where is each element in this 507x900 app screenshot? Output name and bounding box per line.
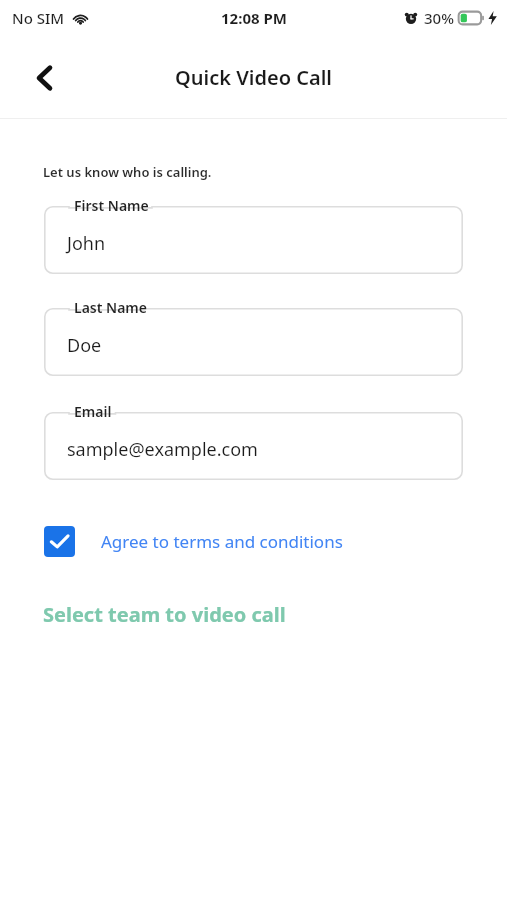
staticText: Doe	[67, 333, 102, 358]
button[interactable]: Agree to terms and conditions	[44, 526, 343, 557]
staticText: sample@example.com	[67, 437, 258, 462]
button[interactable]: Email	[44, 412, 463, 480]
staticText: No SIM	[12, 8, 65, 28]
button[interactable]: Select team to video call	[43, 601, 286, 628]
staticText: Quick Video Call	[175, 64, 332, 91]
staticText: John	[67, 231, 106, 256]
staticText: 12:08 PM	[221, 8, 287, 28]
staticText: Let us know who is calling.	[43, 163, 212, 181]
staticText: 30%	[424, 8, 454, 28]
staticText: First Name	[74, 196, 149, 215]
button[interactable]: Back	[22, 56, 66, 100]
button[interactable]: First Name	[44, 206, 463, 274]
button[interactable]: Last Name	[44, 308, 463, 376]
staticText: Last Name	[74, 298, 147, 317]
staticText: Agree to terms and conditions	[101, 530, 343, 553]
staticText: Select team to video call	[43, 601, 286, 628]
staticText: Email	[74, 402, 112, 421]
